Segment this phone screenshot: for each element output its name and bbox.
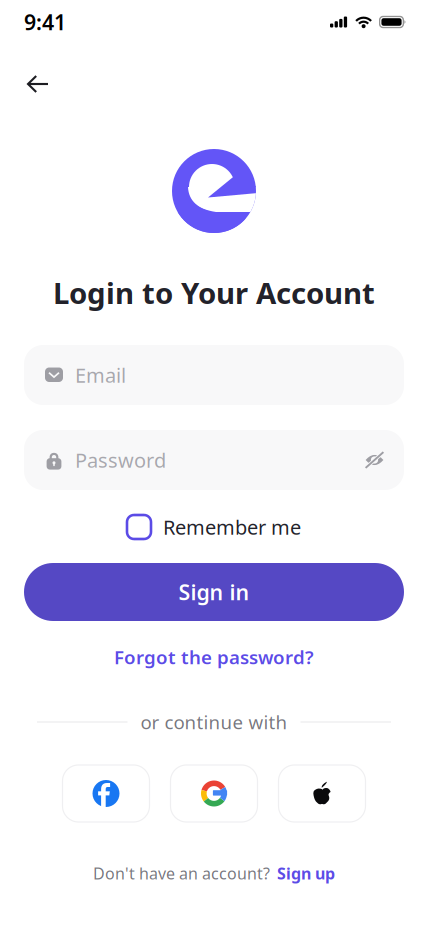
staticText: or continue with xyxy=(140,710,287,734)
button[interactable]: Remember me xyxy=(127,512,301,542)
button[interactable]: Sign in with Apple xyxy=(278,765,365,822)
button[interactable]: Show password xyxy=(359,445,390,474)
staticText: 9:41 xyxy=(24,8,66,36)
staticText: Sign up xyxy=(277,863,335,884)
staticText: Remember me xyxy=(163,514,301,540)
button[interactable]: Back xyxy=(16,64,60,104)
button[interactable]: Forgot the password? xyxy=(114,636,314,678)
staticText: Email xyxy=(75,362,126,388)
button[interactable]: Sign up xyxy=(270,863,335,884)
staticText: Forgot the password? xyxy=(114,645,314,669)
staticText: Don't have an account? xyxy=(93,863,270,884)
staticText: Sign in xyxy=(178,578,249,606)
button[interactable]: Sign in with Google xyxy=(170,765,257,822)
staticText: Login to Your Account xyxy=(53,273,375,312)
staticText: Password xyxy=(75,447,166,473)
button[interactable]: Sign in xyxy=(0,563,428,621)
button[interactable]: Sign in with Facebook xyxy=(62,765,149,822)
